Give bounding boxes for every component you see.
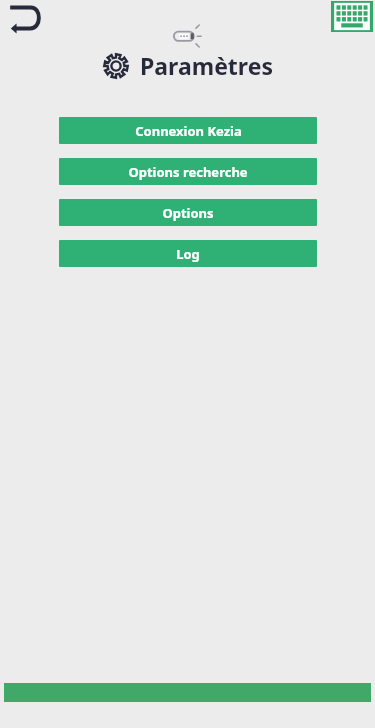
staticText: Connexion Kezia <box>135 122 242 140</box>
staticText: Options recherche <box>128 163 248 181</box>
button[interactable]: Options <box>59 199 317 226</box>
button[interactable]: Connexion Kezia <box>59 117 317 144</box>
staticText: Options <box>162 204 214 222</box>
button[interactable]: Options recherche <box>59 158 317 185</box>
staticText: Paramètres <box>140 50 273 81</box>
staticText: Log <box>176 245 200 263</box>
button[interactable]: Clavier <box>331 1 373 32</box>
button[interactable]: Retour <box>4 2 48 36</box>
button[interactable]: Log <box>59 240 317 267</box>
